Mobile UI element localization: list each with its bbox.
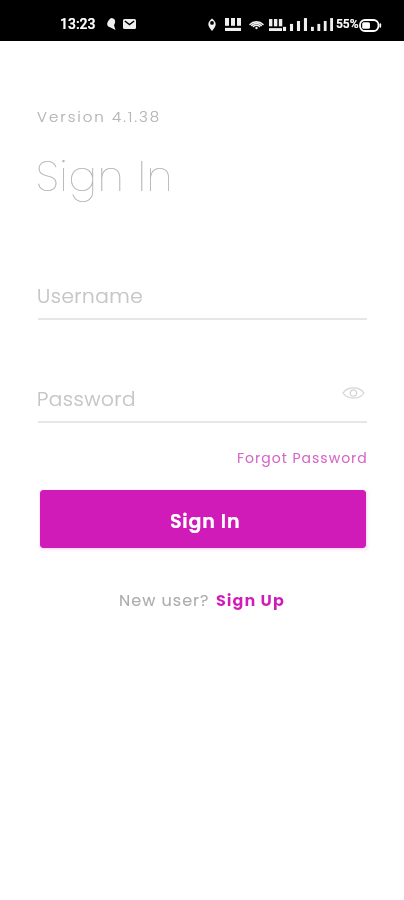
staticText: New user? bbox=[119, 589, 215, 611]
staticText: Sign In bbox=[170, 508, 241, 535]
button[interactable]: Sign Up bbox=[215, 589, 286, 611]
staticText: Username bbox=[37, 282, 144, 310]
button[interactable]: Show password bbox=[338, 378, 368, 408]
button[interactable]: Sign In bbox=[40, 490, 366, 548]
staticText: 55% bbox=[336, 17, 359, 31]
staticText: Password bbox=[37, 385, 137, 413]
staticText: 13:23 bbox=[60, 16, 96, 32]
staticText: Forgot Password bbox=[237, 448, 368, 468]
staticText: Sign In bbox=[36, 147, 174, 206]
staticText: Sign Up bbox=[216, 589, 285, 611]
button[interactable]: Forgot Password bbox=[231, 443, 372, 471]
staticText: Version 4.1.38 bbox=[37, 106, 162, 127]
